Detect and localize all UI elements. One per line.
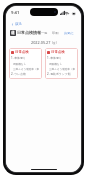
staticText: 9:41	[11, 10, 20, 16]
staticText: 週	[11, 31, 15, 35]
staticText: 1. 車体周り	[11, 56, 26, 60]
staticText: 日常点検	[51, 50, 65, 54]
staticText: お気に入り	[64, 31, 76, 35]
button[interactable]: 戻る	[10, 21, 24, 28]
staticText: 一覧	[41, 31, 48, 35]
staticText: 日常点検情報	[17, 30, 41, 35]
staticText: 原動機なし	[49, 62, 63, 65]
staticText: 三菱ふそう製造車（車リアフロン	[49, 67, 76, 70]
staticText: 日常点検	[15, 50, 29, 54]
staticText: (金)	[52, 41, 57, 45]
staticText: 2022.05.27	[31, 40, 51, 45]
staticText: 戻る	[15, 22, 23, 27]
button[interactable]: お気に入り	[63, 31, 77, 35]
staticText: 1. 車体周り	[47, 56, 62, 60]
button[interactable]: 日常点検	[45, 48, 78, 79]
staticText: 2. 電装系ランプ類	[47, 72, 71, 76]
staticText: 原動機なし	[13, 62, 27, 65]
staticText: 三菱ふそう製造車（車リアフロン	[13, 67, 40, 70]
button[interactable]: 日常点検	[9, 48, 42, 79]
staticText: 印刷	[52, 31, 59, 35]
staticText: 2. ウレ点検	[11, 72, 26, 76]
button[interactable]: 週	[10, 30, 16, 36]
